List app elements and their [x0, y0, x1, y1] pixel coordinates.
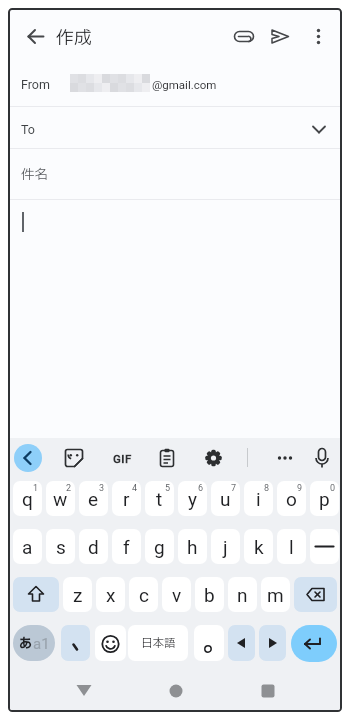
staticText: z — [73, 584, 83, 606]
button[interactable] — [194, 625, 224, 661]
button[interactable]: w — [46, 481, 75, 516]
staticText: GIF — [113, 452, 132, 465]
staticText: 作成 — [56, 25, 92, 49]
button[interactable]: n — [228, 577, 257, 612]
button[interactable] — [266, 22, 294, 50]
button[interactable]: m — [261, 577, 290, 612]
button[interactable]: h — [178, 529, 207, 564]
staticText: v — [172, 584, 182, 606]
staticText: f — [123, 536, 130, 558]
button[interactable] — [153, 444, 181, 472]
staticText: i — [256, 488, 261, 510]
staticText: u — [220, 488, 231, 510]
button[interactable] — [14, 444, 42, 472]
staticText: 1 — [33, 483, 39, 494]
button[interactable]: r — [112, 481, 141, 516]
button[interactable] — [69, 679, 99, 703]
button[interactable]: z — [63, 577, 92, 612]
staticText: 3 — [99, 483, 105, 494]
staticText: k — [254, 536, 264, 558]
staticText: g — [154, 536, 165, 558]
button[interactable] — [200, 444, 228, 472]
staticText: n — [237, 584, 248, 606]
button[interactable]: l — [277, 529, 306, 564]
staticText: s — [56, 536, 66, 558]
staticText: q — [22, 488, 33, 510]
staticText: あ — [19, 634, 33, 653]
button[interactable] — [306, 22, 334, 50]
button[interactable] — [61, 625, 90, 661]
button[interactable] — [60, 444, 88, 472]
staticText: e — [88, 488, 99, 510]
staticText: d — [88, 536, 99, 558]
staticText: p — [319, 488, 330, 510]
button[interactable]: i — [244, 481, 273, 516]
button[interactable]: o — [277, 481, 306, 516]
button[interactable] — [10, 107, 340, 148]
button[interactable]: 日本語 — [128, 625, 188, 661]
staticText: a — [22, 536, 33, 558]
staticText: 0 — [330, 483, 336, 494]
button[interactable]: b — [195, 577, 224, 612]
button[interactable] — [230, 22, 258, 50]
staticText: 2 — [66, 483, 72, 494]
button[interactable]: x — [96, 577, 125, 612]
staticText: r — [123, 488, 130, 510]
button[interactable] — [13, 577, 59, 612]
button[interactable]: k — [244, 529, 273, 564]
staticText: t — [156, 488, 163, 510]
button[interactable]: t — [145, 481, 174, 516]
staticText: b — [204, 584, 215, 606]
button[interactable]: g — [145, 529, 174, 564]
staticText: 5 — [165, 483, 171, 494]
button[interactable] — [308, 444, 336, 472]
button[interactable] — [10, 149, 340, 199]
staticText: @gmail.com — [152, 78, 217, 91]
button[interactable]: e — [79, 481, 108, 516]
button[interactable] — [161, 679, 191, 703]
staticText: From — [21, 77, 50, 92]
staticText: m — [267, 584, 284, 606]
button[interactable] — [259, 625, 286, 661]
staticText: l — [289, 536, 294, 558]
button[interactable]: j — [211, 529, 240, 564]
button[interactable] — [23, 24, 49, 50]
staticText: 日本語 — [141, 635, 176, 652]
staticText: a1 — [33, 635, 50, 653]
staticText: y — [188, 488, 197, 510]
staticText: 7 — [231, 483, 237, 494]
staticText: o — [286, 488, 297, 510]
staticText: 8 — [264, 483, 270, 494]
button[interactable]: u — [211, 481, 240, 516]
staticText: 件名 — [21, 165, 48, 185]
button[interactable]: y — [178, 481, 207, 516]
staticText: j — [223, 536, 228, 558]
button[interactable] — [253, 679, 283, 703]
staticText: To — [21, 122, 35, 137]
button[interactable]: GIF — [108, 444, 136, 472]
button[interactable]: v — [162, 577, 191, 612]
button[interactable] — [291, 625, 337, 662]
staticText: c — [139, 584, 149, 606]
button[interactable]: d — [79, 529, 108, 564]
button[interactable] — [95, 625, 126, 661]
button[interactable]: a — [13, 529, 42, 564]
button[interactable]: f — [112, 529, 141, 564]
button[interactable]: s — [46, 529, 75, 564]
staticText: 9 — [297, 483, 303, 494]
staticText: 4 — [132, 483, 138, 494]
button[interactable] — [294, 577, 337, 612]
button[interactable]: c — [129, 577, 158, 612]
staticText: 6 — [198, 483, 204, 494]
button[interactable]: q — [13, 481, 42, 516]
button[interactable] — [310, 529, 339, 564]
button[interactable] — [10, 62, 340, 107]
staticText: w — [53, 488, 68, 510]
staticText: x — [106, 584, 116, 606]
staticText: h — [187, 536, 198, 558]
button[interactable]: あ — [13, 625, 55, 661]
button[interactable] — [271, 444, 299, 472]
button[interactable] — [228, 625, 255, 661]
button[interactable]: p — [310, 481, 339, 516]
